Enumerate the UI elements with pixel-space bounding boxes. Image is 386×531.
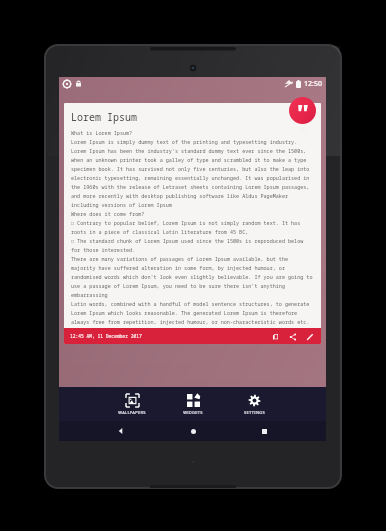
button[interactable]: Copy bbox=[270, 331, 281, 342]
staticText: SETTINGS bbox=[244, 410, 265, 415]
button[interactable]: Back bbox=[111, 421, 131, 441]
button[interactable]: WALLPAPERS bbox=[112, 394, 152, 415]
staticText: What is Lorem Ipsum? Lorem Ipsum is simp… bbox=[71, 130, 315, 325]
staticText: WALLPAPERS bbox=[118, 410, 146, 415]
button[interactable]: WIDGETS bbox=[173, 394, 213, 415]
staticText: Lorem Ipsum bbox=[71, 110, 137, 124]
button[interactable]: Edit bbox=[304, 331, 315, 342]
button[interactable]: SETTINGS bbox=[234, 394, 274, 415]
button[interactable]: Recents bbox=[254, 421, 274, 441]
button[interactable]: Home bbox=[183, 421, 203, 441]
staticText: 12:50 bbox=[304, 79, 322, 89]
button[interactable]: New quote bbox=[289, 97, 316, 124]
button[interactable]: Share bbox=[287, 331, 298, 342]
staticText: 12:45 AM, 11 December 2017 bbox=[70, 333, 142, 339]
button[interactable]: Lorem Ipsum bbox=[64, 103, 321, 344]
staticText: WIDGETS bbox=[183, 410, 203, 415]
